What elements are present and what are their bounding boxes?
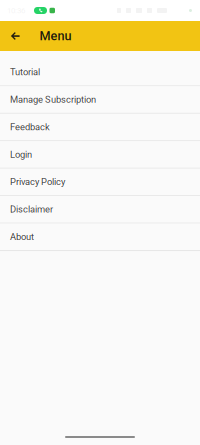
- button[interactable]: Back: [4, 21, 27, 51]
- staticText: Privacy Policy: [10, 176, 65, 187]
- button[interactable]: About: [0, 224, 200, 251]
- staticText: Manage Subscription: [10, 94, 96, 105]
- button[interactable]: Login: [0, 141, 200, 169]
- staticText: Tutorial: [10, 67, 40, 78]
- staticText: Menu: [39, 29, 71, 43]
- button[interactable]: Disclaimer: [0, 196, 200, 224]
- staticText: Feedback: [10, 122, 50, 132]
- button[interactable]: Manage Subscription: [0, 86, 200, 114]
- button[interactable]: Privacy Policy: [0, 169, 200, 196]
- staticText: Disclaimer: [10, 204, 53, 215]
- staticText: Login: [10, 149, 32, 160]
- button[interactable]: Feedback: [0, 114, 200, 141]
- staticText: About: [10, 231, 34, 242]
- button[interactable]: Tutorial: [0, 59, 200, 86]
